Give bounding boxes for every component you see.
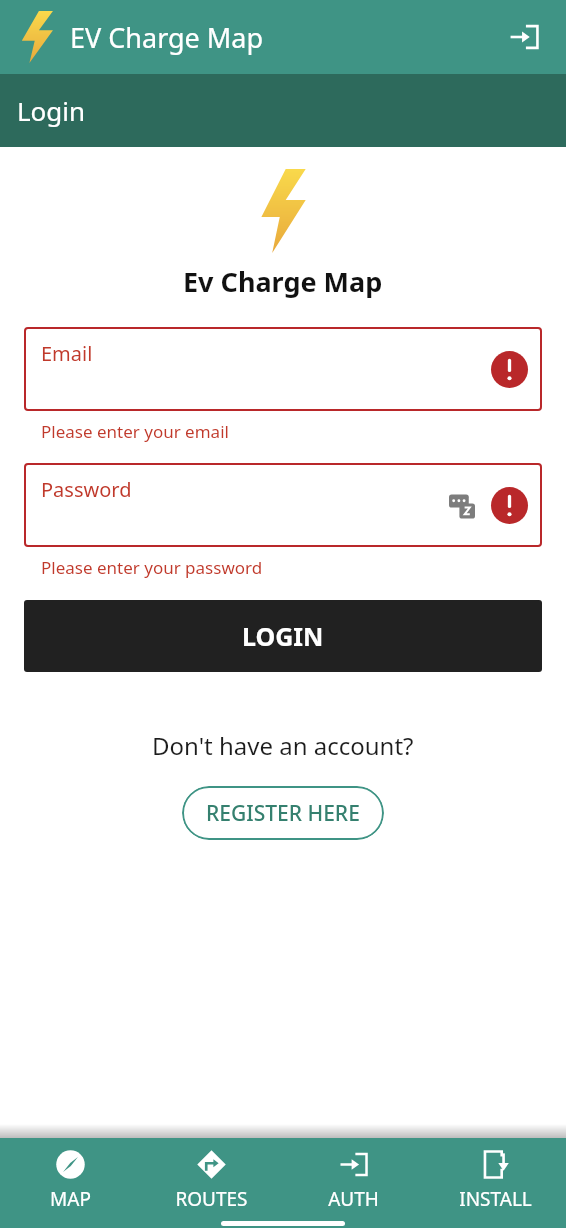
button[interactable]: Login [502,15,546,59]
button[interactable]: REGISTER HERE [182,786,384,840]
button[interactable]: LOGIN [24,600,542,672]
button[interactable]: MAP [0,1138,141,1228]
staticText: Don't have an account? [152,729,414,762]
staticText: Please enter your email [41,420,566,443]
button[interactable]: Password [24,463,542,547]
staticText: AUTH [328,1186,379,1212]
staticText: Email [41,340,93,367]
staticText: Ev Charge Map [183,263,383,300]
button[interactable]: Email [24,327,542,411]
staticText: EV Charge Map [70,19,264,56]
staticText: ROUTES [175,1186,248,1212]
button[interactable]: ROUTES [141,1138,282,1228]
staticText: INSTALL [459,1186,532,1212]
staticText: LOGIN [242,619,324,653]
staticText: MAP [50,1186,91,1212]
staticText: Login [17,93,86,128]
staticText: REGISTER HERE [206,799,360,828]
button[interactable]: INSTALL [424,1138,566,1228]
staticText: Please enter your password [41,556,566,579]
staticText: Password [41,476,132,503]
button[interactable]: AUTH [282,1138,424,1228]
